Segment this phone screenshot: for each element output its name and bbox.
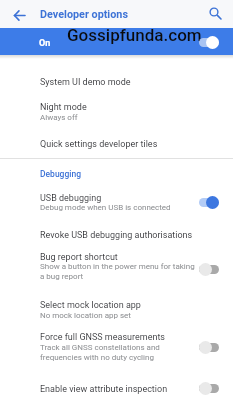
staticText: Bug report shortcut	[40, 252, 118, 263]
staticText: Select mock location app	[40, 300, 141, 311]
button[interactable]: Enable view attribute inspection	[0, 372, 233, 405]
button[interactable]: Force full GNSS measurements	[0, 328, 233, 368]
staticText: Developer options	[40, 8, 128, 21]
staticText: Track all GNSS constellations and	[40, 343, 160, 352]
staticText: frequencies with no duty cycling	[40, 353, 154, 362]
button[interactable]	[8, 4, 30, 26]
button[interactable]: Bug report shortcut	[0, 248, 233, 289]
staticText: Always off	[40, 113, 78, 122]
button[interactable]: Revoke USB debugging authorisations	[0, 221, 233, 248]
staticText: Debug mode when USB is connected	[40, 203, 171, 212]
staticText: Enable view attribute inspection	[40, 384, 168, 395]
button[interactable]: USB debugging	[0, 188, 233, 217]
staticText: USB debugging	[40, 193, 102, 204]
staticText: Debugging	[40, 169, 81, 179]
staticText: On	[39, 38, 51, 49]
staticText: Gossipfunda.com	[67, 25, 202, 45]
button[interactable]: On	[0, 28, 233, 55]
staticText: Quick settings developer tiles	[40, 139, 158, 150]
button[interactable]: Select mock location app	[0, 291, 233, 328]
button[interactable]: Quick settings developer tiles	[0, 130, 233, 158]
staticText: Force full GNSS measurements	[40, 332, 165, 343]
button[interactable]: Night mode	[0, 96, 233, 130]
staticText: Night mode	[40, 102, 87, 113]
staticText: Revoke USB debugging authorisations	[40, 230, 193, 241]
staticText: No mock location app set	[40, 311, 131, 320]
button[interactable]	[204, 2, 226, 24]
staticText: Show a button in the power menu for taki…	[40, 262, 195, 271]
staticText: a bug report	[40, 272, 84, 281]
staticText: System UI demo mode	[40, 77, 131, 88]
button[interactable]: System UI demo mode	[0, 64, 233, 96]
